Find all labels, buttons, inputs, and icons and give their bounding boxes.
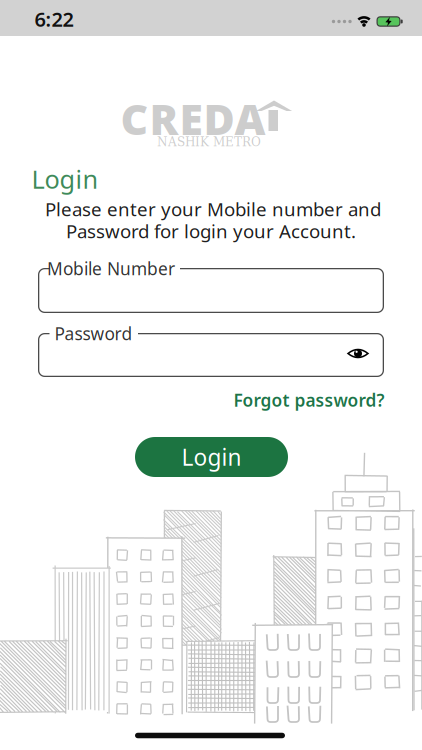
button[interactable]: Password [38,333,384,377]
staticText: Please enter your Mobile number and [45,197,381,221]
staticText: Mobile Number [47,257,175,280]
staticText: 6:22 [34,6,73,32]
button[interactable]: Forgot password? [233,388,384,411]
staticText: Password for login your Account. [66,219,356,243]
staticText: Login [181,442,241,472]
button[interactable]: Mobile Number [38,268,384,313]
button[interactable]: Login [135,437,288,477]
staticText: Forgot password? [233,388,384,411]
staticText: NASHIK METRO [157,135,261,149]
staticText: Password [54,322,132,345]
staticText: Login [31,162,98,196]
button[interactable]: Show password [340,335,376,371]
staticText: CREDA [120,90,265,147]
